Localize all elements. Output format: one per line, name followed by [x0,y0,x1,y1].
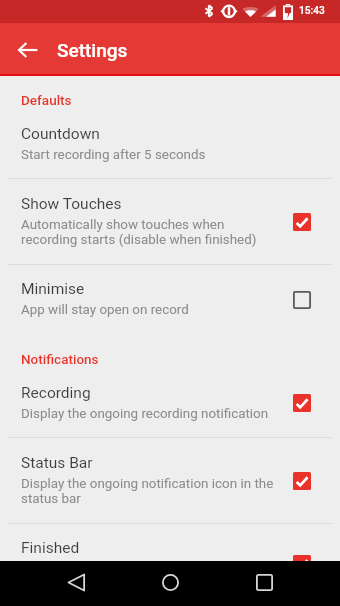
staticText: Defaults [21,92,72,108]
button[interactable]: Status Bar [0,438,340,523]
staticText: Automatically show touches when recordin… [21,217,257,247]
button[interactable]: Enabled [284,546,320,561]
button[interactable]: Home [150,562,190,602]
staticText: Show Touches [21,195,122,213]
button[interactable]: Countdown [0,110,340,178]
staticText: Countdown [21,125,100,143]
button[interactable]: Finished [0,524,340,561]
button[interactable]: Recording [0,369,340,437]
staticText: Display the ongoing recording notificati… [21,406,269,421]
staticText: Display the ongoing notification icon in… [21,476,274,506]
button[interactable]: Enabled [284,385,320,421]
staticText: Recording [21,384,91,402]
staticText: Settings [57,39,128,61]
staticText: Start recording after 5 seconds [21,147,206,162]
staticText: 15:43 [299,5,325,17]
button[interactable]: Disabled [284,282,320,318]
button[interactable]: Enabled [284,204,320,240]
button[interactable]: Show Touches [0,179,340,264]
staticText: Minimise [21,280,85,298]
staticText: Finished [21,539,80,557]
staticText: App will stay open on record [21,302,189,317]
staticText: Notifications [21,351,99,367]
button[interactable]: Back [8,30,48,70]
button[interactable]: Minimise [0,265,340,335]
staticText: Status Bar [21,454,93,472]
button[interactable]: Back [56,562,96,602]
button[interactable]: Recent apps [244,562,284,602]
button[interactable]: Enabled [284,463,320,499]
